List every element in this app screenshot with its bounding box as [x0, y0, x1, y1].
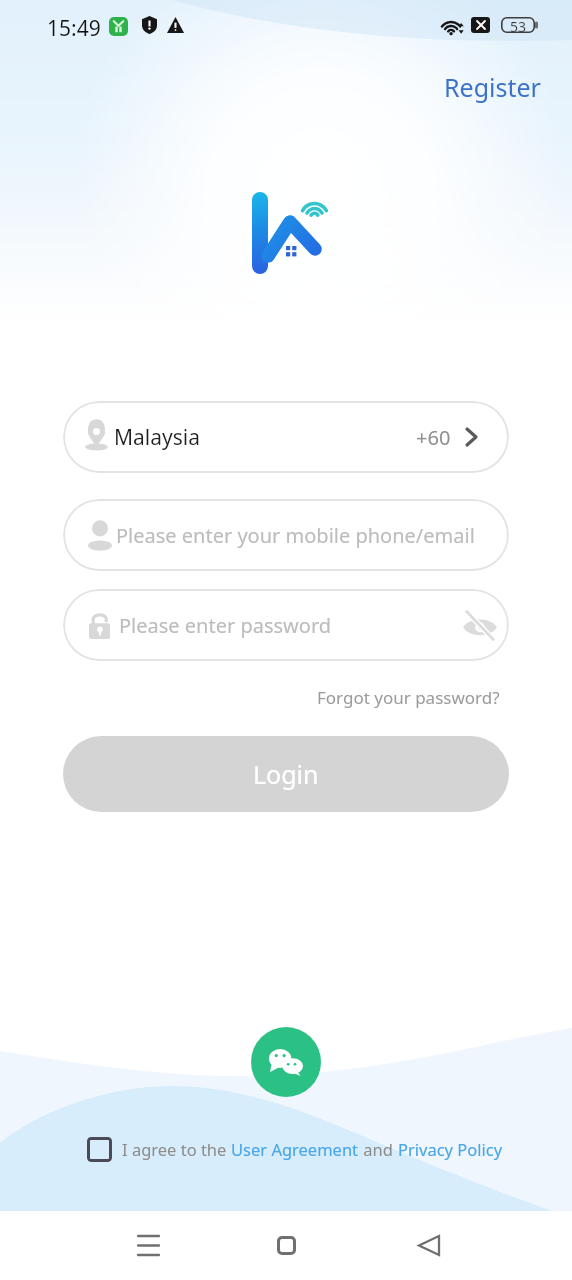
button[interactable]: Agree to terms	[79, 1129, 119, 1169]
staticText: Malaysia	[114, 423, 200, 452]
staticText: I agree to the	[122, 1138, 231, 1160]
staticText: 53	[510, 17, 527, 36]
staticText: Please enter password	[119, 612, 332, 639]
staticText: Forgot your password?	[317, 686, 500, 709]
staticText: User Agreement	[231, 1138, 359, 1160]
button[interactable]: Forgot your password?	[307, 676, 510, 719]
button[interactable]: Please enter password	[63, 589, 509, 661]
staticText: 15:49	[47, 14, 101, 43]
button[interactable]: Register	[428, 62, 557, 112]
staticText: Please enter your mobile phone/email	[116, 522, 475, 549]
staticText: and	[359, 1138, 398, 1160]
staticText: +60	[416, 424, 451, 451]
staticText: Privacy Policy	[398, 1138, 503, 1160]
button[interactable]: Recents	[118, 1215, 178, 1275]
button[interactable]: Back	[399, 1215, 459, 1275]
button[interactable]: Please enter your mobile phone/email	[63, 499, 509, 571]
staticText: Login	[253, 757, 319, 791]
button[interactable]: Login	[63, 736, 509, 812]
button[interactable]: Privacy Policy	[398, 1138, 503, 1160]
staticText: Register	[444, 70, 541, 104]
button[interactable]: Malaysia	[63, 401, 509, 473]
button[interactable]: Home	[256, 1215, 316, 1275]
button[interactable]: Show password	[453, 598, 507, 652]
button[interactable]: Sign in with WeChat	[251, 1027, 321, 1097]
button[interactable]: User Agreement	[231, 1138, 359, 1160]
